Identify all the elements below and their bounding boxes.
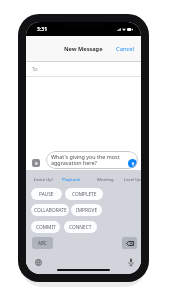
button[interactable]: Send [128, 159, 137, 168]
staticText: New Message [64, 45, 103, 53]
button[interactable]: Dictate [126, 257, 136, 267]
button[interactable]: IMPROVE [71, 204, 102, 216]
staticText: Level Up! [124, 177, 141, 183]
staticText: COMPLETE [72, 191, 97, 198]
button[interactable]: COMMIT [31, 221, 60, 233]
button[interactable]: Apps [32, 159, 40, 167]
staticText: Meeting [97, 177, 114, 183]
button[interactable]: ABC [32, 237, 53, 249]
button[interactable]: Cancel [110, 40, 141, 58]
staticText: Playbook [62, 177, 80, 183]
staticText: PAUSE [39, 191, 54, 198]
staticText: COMMIT [36, 224, 56, 231]
button[interactable]: Language [33, 257, 43, 267]
staticText: Cancel [116, 45, 135, 53]
button[interactable]: COMPLETE [65, 188, 103, 200]
button[interactable]: Backspace [122, 237, 137, 249]
staticText: IMPROVE [76, 207, 98, 214]
staticText: CONNECT [69, 224, 92, 231]
button[interactable]: CONNECT [64, 221, 97, 233]
button[interactable]: Level Up! [119, 176, 141, 184]
staticText: ABC [38, 240, 47, 246]
button[interactable]: Playbook [57, 176, 85, 184]
button[interactable]: PAUSE [31, 188, 62, 200]
staticText: Invite Up! [34, 177, 53, 183]
button[interactable]: Meeting [91, 176, 119, 184]
button[interactable]: Invite Up! [29, 176, 57, 184]
staticText: To: [32, 66, 38, 72]
staticText: COLLABORATE [34, 207, 67, 214]
staticText: 3:31 [37, 26, 47, 33]
staticText: What's giving you the most aggravation h… [51, 153, 124, 166]
button[interactable]: COLLABORATE [31, 204, 69, 216]
